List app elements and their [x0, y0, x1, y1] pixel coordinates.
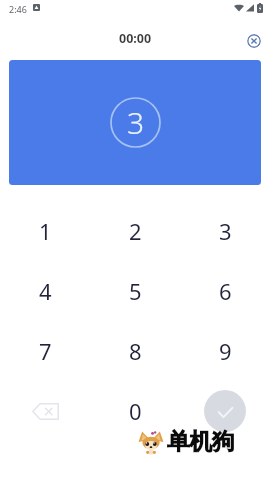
staticText: 2:46 — [9, 3, 27, 15]
staticText: 7 — [39, 336, 52, 366]
button[interactable]: 3 — [180, 201, 270, 261]
button[interactable]: 2 — [90, 201, 180, 261]
staticText: 9 — [219, 336, 232, 366]
button[interactable]: Confirm — [204, 390, 246, 432]
button[interactable]: 6 — [180, 261, 270, 321]
staticText: 6 — [219, 276, 232, 306]
button[interactable]: Count display: 3 — [9, 60, 261, 185]
button[interactable]: 5 — [90, 261, 180, 321]
staticText: 0 — [129, 396, 142, 426]
button[interactable]: 4 — [0, 261, 90, 321]
button[interactable]: 0 — [90, 381, 180, 441]
button[interactable]: 8 — [90, 321, 180, 381]
staticText: 4 — [39, 276, 52, 306]
staticText: 00:00 — [119, 30, 152, 47]
button[interactable]: Close — [247, 34, 261, 48]
staticText: 5 — [129, 276, 142, 306]
button[interactable]: 7 — [0, 321, 90, 381]
staticText: 8 — [129, 336, 142, 366]
other: Backspace — [32, 403, 59, 420]
staticText: 2 — [129, 216, 142, 246]
button[interactable]: Backspace — [0, 381, 90, 441]
button[interactable]: 1 — [0, 201, 90, 261]
staticText: 1 — [39, 216, 52, 246]
staticText: 3 — [127, 102, 145, 143]
button[interactable]: Confirm — [180, 381, 270, 441]
staticText: 3 — [219, 216, 232, 246]
staticText: 单机狗 — [167, 427, 235, 455]
button[interactable]: 9 — [180, 321, 270, 381]
